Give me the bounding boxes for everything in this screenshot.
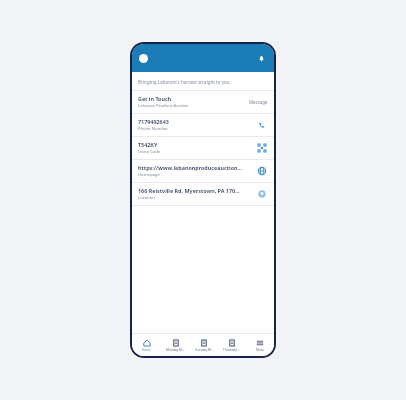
button[interactable]: https://www.lebanonproduceauction... [132,160,274,182]
staticText: Get in Touch [138,95,172,102]
staticText: Phone Number [138,126,169,132]
staticText: Homepage [138,172,160,178]
staticText: 7179492643 [138,118,169,125]
staticText: Message [249,99,268,105]
staticText: More [256,348,264,352]
staticText: Bringing Lebanon's harvest straight to y… [138,79,230,85]
button[interactable]: T542KY [132,137,274,159]
staticText: https://www.lebanonproduceauction... [138,164,243,171]
staticText: Location [138,195,155,201]
staticText: Invite Code [138,149,161,155]
button[interactable]: Notifications [255,52,267,64]
other: qr [258,144,266,152]
staticText: Thursday ... [223,348,241,352]
button[interactable]: Home [132,334,161,356]
button[interactable]: Profile [139,54,148,63]
button[interactable]: Thursday ... [218,334,246,356]
staticText: Monday M... [166,348,185,352]
button[interactable]: 7179492643 [132,114,274,136]
button[interactable]: Get in Touch [132,91,274,113]
staticText: Lebanon Produce Auction [138,103,189,109]
button[interactable]: Monday M... [161,334,190,356]
staticText: Tuesday M... [195,348,214,352]
button[interactable]: More [246,334,274,356]
staticText: 166 Reistville Rd, Myerstown, PA 170... [138,187,240,194]
other: globe [258,167,266,175]
button[interactable]: 166 Reistville Rd, Myerstown, PA 170... [132,183,274,205]
other: phone [258,121,266,129]
other: pin [258,190,266,198]
staticText: T542KY [138,141,158,148]
staticText: Home [142,348,152,352]
button[interactable]: Tuesday M... [190,334,218,356]
